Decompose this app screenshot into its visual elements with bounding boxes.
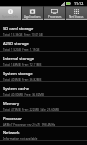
button[interactable]: Network <box>0 125 87 141</box>
staticText: System storage <box>3 71 33 77</box>
staticText: Information not available <box>3 137 38 141</box>
staticText: System Info <box>2 15 19 19</box>
staticText: Total: 1.52GB, Free: 1.15GB <box>3 48 40 52</box>
button[interactable]: System cache <box>0 81 87 97</box>
button[interactable]: Battery <box>0 140 87 145</box>
staticText: Total: 473MB, Free: 222MB, Idle: 25.60MB <box>3 108 59 112</box>
staticText: Internal storage <box>3 56 34 62</box>
button[interactable]: System Info <box>0 6 21 20</box>
staticText: Processes <box>48 15 62 19</box>
staticText: ARMv7 Processor rev 2 (v7l), 998.4MHz <box>3 123 56 127</box>
staticText: 11:12 <box>74 1 84 6</box>
staticText: Memory <box>3 101 20 107</box>
staticText: SD card storage <box>3 26 34 32</box>
staticText: Network <box>3 130 20 136</box>
staticText: System cache <box>3 86 30 92</box>
button[interactable]: Net Stasus <box>66 6 87 20</box>
staticText: Total: 148MB, Free: 72.11MB <box>3 63 42 67</box>
staticText: Net Stasus <box>69 15 84 19</box>
staticText: Total: 403MB, Free: 36.82MB <box>3 78 42 82</box>
staticText: Total: 40.00MB, Free: 36.82MB <box>3 93 44 97</box>
staticText: A2SD storage <box>3 41 29 47</box>
button[interactable]: Memory <box>0 96 87 112</box>
button[interactable]: Applications <box>22 6 43 20</box>
staticText: Processor <box>3 116 22 122</box>
button[interactable]: System storage <box>0 66 87 82</box>
button[interactable]: Processor <box>0 111 87 127</box>
button[interactable]: Processes <box>44 6 65 20</box>
staticText: Applications <box>24 15 41 19</box>
button[interactable]: A2SD storage <box>0 36 87 52</box>
staticText: Total: 13.36GB, Free: 10.01GB <box>3 33 43 36</box>
button[interactable]: Internal storage <box>0 51 87 67</box>
button[interactable]: SD card storage <box>0 20 87 36</box>
